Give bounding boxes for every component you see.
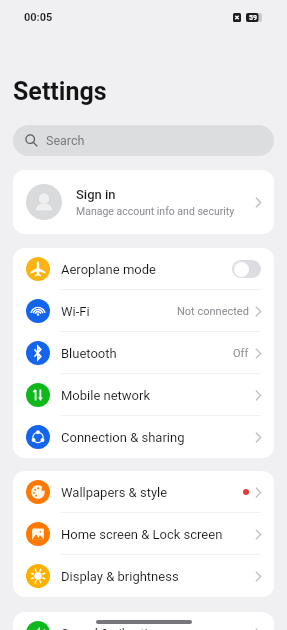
button[interactable]: Search — [13, 125, 274, 156]
button[interactable]: Mobile network — [13, 374, 274, 416]
button[interactable]: Wallpapers & style — [13, 471, 274, 513]
staticText: 00:05 — [24, 11, 53, 24]
button[interactable]: Sign in — [13, 170, 274, 234]
staticText: Bluetooth — [61, 346, 233, 361]
button[interactable]: Wi-Fi — [13, 290, 274, 332]
button[interactable]: Connection & sharing — [13, 416, 274, 458]
staticText: Off — [233, 347, 249, 360]
staticText: 59 — [249, 14, 258, 22]
button[interactable]: Aeroplane mode — [13, 248, 274, 290]
staticText: Wi-Fi — [61, 304, 177, 319]
staticText: Aeroplane mode — [61, 262, 232, 277]
staticText: Wallpapers & style — [61, 485, 243, 500]
staticText: Sound & vibration — [61, 626, 255, 630]
staticText: Home screen & Lock screen — [61, 527, 255, 542]
staticText: Settings — [13, 77, 107, 106]
staticText: Manage account info and security — [76, 205, 235, 217]
button[interactable]: Bluetooth — [13, 332, 274, 374]
button[interactable]: Home screen & Lock screen — [13, 513, 274, 555]
button[interactable]: Display & brightness — [13, 555, 274, 597]
staticText: Not connected — [177, 305, 249, 318]
staticText: Sign in — [76, 187, 116, 202]
staticText: Display & brightness — [61, 569, 255, 584]
staticText: Search — [46, 133, 85, 148]
staticText: Connection & sharing — [61, 430, 255, 445]
button[interactable]: Sound & vibration — [13, 612, 274, 630]
staticText: Mobile network — [61, 388, 255, 403]
